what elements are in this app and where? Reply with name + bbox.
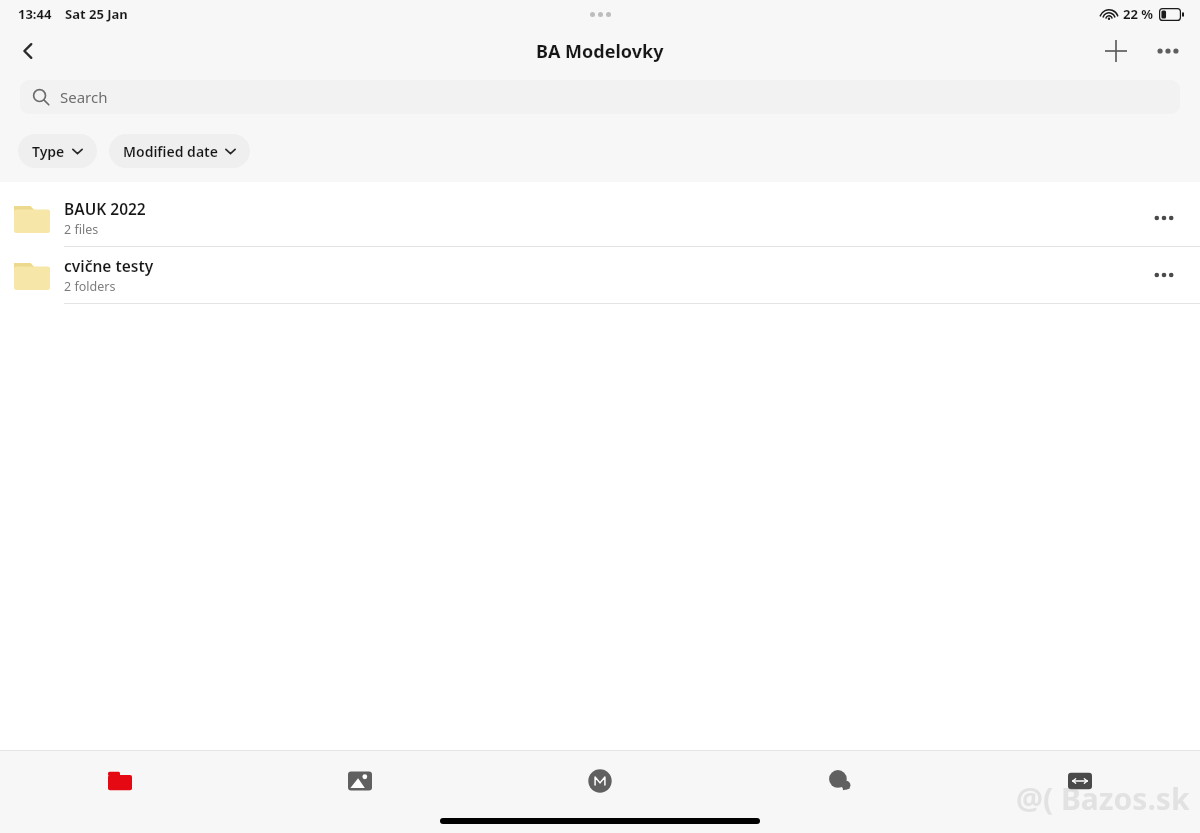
staticText: 2 folders [64, 278, 116, 295]
button[interactable]: More options [1146, 29, 1190, 73]
button[interactable]: Transfer [960, 751, 1200, 811]
button[interactable]: Type [18, 134, 97, 168]
button[interactable]: cvične testy [0, 247, 1200, 304]
staticText: @( Bazos.sk [1016, 778, 1190, 819]
button[interactable]: BAUK 2022 [0, 190, 1200, 247]
button[interactable]: Search [20, 80, 1180, 114]
staticText: 22 % [1123, 5, 1153, 23]
button[interactable]: Home [480, 751, 720, 811]
button[interactable]: Back [6, 29, 50, 73]
staticText: BA Modelovky [536, 39, 664, 64]
button[interactable]: Item options [1140, 194, 1188, 242]
staticText: cvične testy [64, 255, 154, 276]
button[interactable]: Add [1094, 29, 1138, 73]
staticText: Modified date [123, 142, 218, 161]
staticText: Type [32, 142, 65, 161]
button[interactable]: Modified date [109, 134, 250, 168]
button[interactable]: Files [0, 751, 240, 811]
button[interactable]: Item options [1140, 251, 1188, 299]
button[interactable]: Chat [720, 751, 960, 811]
staticText: BAUK 2022 [64, 198, 146, 219]
button[interactable]: Photos [240, 751, 480, 811]
staticText: Search [60, 87, 108, 107]
staticText: 2 files [64, 221, 99, 238]
staticText: Sat 25 Jan [65, 5, 128, 23]
staticText: 13:44 [18, 5, 52, 23]
